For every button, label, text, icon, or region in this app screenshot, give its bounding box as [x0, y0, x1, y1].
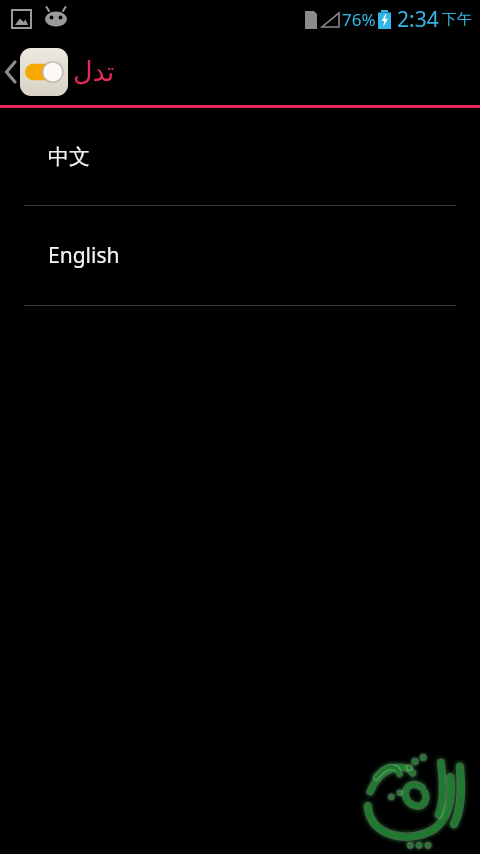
button[interactable]: English — [0, 206, 480, 305]
button[interactable]: Back — [0, 38, 20, 105]
button[interactable]: App icon — [20, 48, 68, 96]
staticText: 76% — [342, 8, 376, 31]
staticText: English — [48, 241, 120, 270]
staticText: تدل — [73, 56, 115, 87]
staticText: 下午 — [442, 10, 472, 29]
staticText: 中文 — [48, 144, 90, 170]
button[interactable]: 中文 — [0, 109, 480, 205]
staticText: 2:34 — [397, 5, 439, 34]
